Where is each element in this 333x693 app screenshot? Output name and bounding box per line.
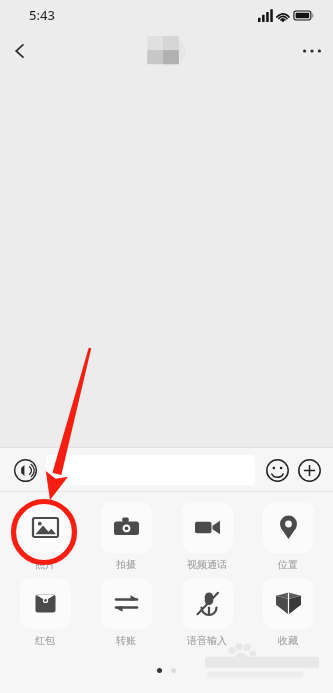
staticText: 视频通话: [187, 558, 227, 571]
staticText: 红包: [35, 634, 55, 647]
button[interactable]: [46, 455, 255, 485]
button[interactable]: Emoji: [261, 454, 293, 486]
button[interactable]: Back: [0, 31, 40, 71]
button[interactable]: 语音输入: [171, 578, 243, 647]
staticText: 收藏: [278, 634, 298, 647]
staticText: 照片: [35, 558, 55, 571]
staticText: 5:43: [29, 6, 55, 24]
button[interactable]: More options: [291, 30, 333, 72]
button[interactable]: 位置: [252, 502, 324, 571]
button[interactable]: 拍摄: [90, 502, 162, 571]
button[interactable]: 转账: [90, 578, 162, 647]
button[interactable]: 视频通话: [171, 502, 243, 571]
staticText: 转账: [116, 634, 136, 647]
staticText: 位置: [278, 558, 298, 571]
button[interactable]: 红包: [9, 578, 81, 647]
staticText: 拍摄: [116, 558, 136, 571]
button[interactable]: 照片: [9, 502, 81, 571]
button[interactable]: More functions: [293, 454, 325, 486]
staticText: 语音输入: [187, 634, 227, 647]
button[interactable]: 收藏: [252, 578, 324, 647]
button[interactable]: Voice message: [8, 453, 42, 487]
